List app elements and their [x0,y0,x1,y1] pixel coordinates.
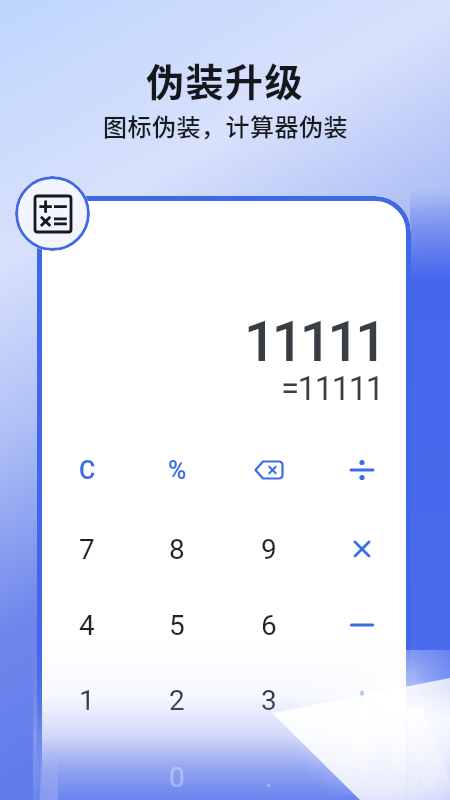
button[interactable]: % [133,434,221,506]
button[interactable] [318,434,406,506]
button[interactable] [318,664,406,736]
button[interactable]: C [43,434,131,506]
staticText: 2 [169,684,185,717]
button[interactable]: 8 [133,513,221,585]
button[interactable] [318,589,406,661]
button[interactable]: 1 [43,664,131,736]
staticText: C [79,456,96,485]
button[interactable] [225,434,313,506]
button[interactable]: 0 [133,741,221,800]
staticText: 7 [79,533,95,566]
staticText: 4 [79,609,95,642]
button[interactable]: 9 [225,513,313,585]
staticText: . [265,761,273,794]
button[interactable]: . [225,741,313,800]
button[interactable]: 4 [43,589,131,661]
staticText: 伪装升级 [146,52,305,107]
staticText: =11111 [281,369,383,408]
staticText: 5 [169,609,185,642]
button[interactable]: 7 [43,513,131,585]
staticText: 3 [261,684,277,717]
staticText: 图标伪装，计算器伪装 [103,108,348,143]
button[interactable]: 3 [225,664,313,736]
button[interactable] [15,176,90,251]
staticText: 1 [79,684,95,717]
button[interactable]: 5 [133,589,221,661]
staticText: % [168,456,187,485]
staticText: 0 [169,761,185,794]
staticText: 8 [169,533,185,566]
staticText: 9 [261,533,277,566]
staticText: 6 [261,609,277,642]
button[interactable]: 2 [133,664,221,736]
button[interactable] [318,513,406,585]
button[interactable]: 6 [225,589,313,661]
staticText: 11111 [244,309,384,373]
